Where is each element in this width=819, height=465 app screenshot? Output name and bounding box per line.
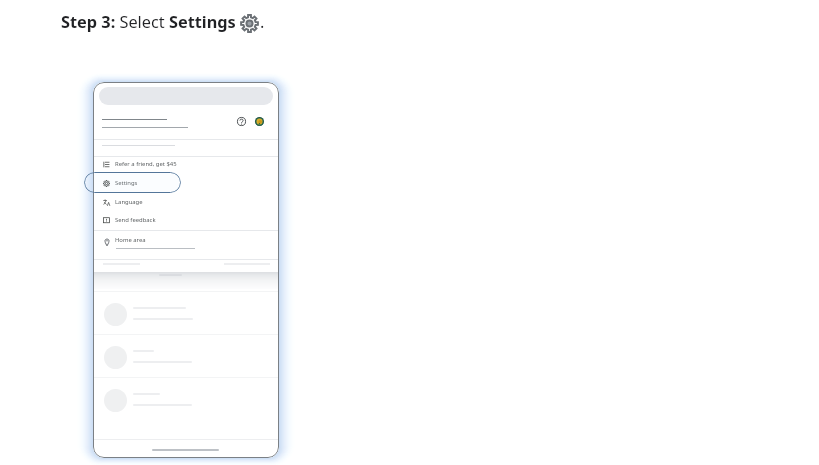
button[interactable]: Account: [253, 115, 265, 127]
staticText: Home area: [115, 236, 146, 244]
button[interactable]: Refer a friend, get $45: [93, 155, 279, 173]
button[interactable]: Help: [235, 115, 247, 127]
button[interactable]: [93, 342, 279, 384]
button[interactable]: Settings highlight: [84, 172, 181, 193]
button[interactable]: [93, 385, 279, 427]
button[interactable]: Settings: [93, 174, 279, 192]
staticText: Send feedback: [115, 216, 156, 224]
staticText: Step 3: Select Settings: [61, 11, 236, 33]
button[interactable]: Home area: [93, 231, 279, 252]
button[interactable]: Send feedback: [93, 211, 279, 229]
staticText: Settings: [115, 179, 138, 187]
button[interactable]: Language: [93, 193, 279, 211]
button[interactable]: [93, 299, 279, 341]
staticText: Refer a friend, get $45: [115, 160, 177, 168]
staticText: .: [260, 11, 265, 33]
staticText: Language: [115, 198, 143, 206]
